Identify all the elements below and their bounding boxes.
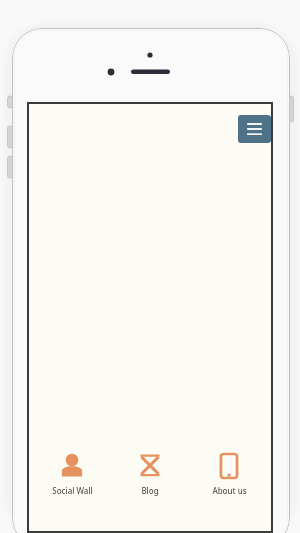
staticText: Blog [141, 485, 159, 496]
button[interactable]: Social Wall [36, 449, 108, 496]
staticText: About us [212, 485, 247, 496]
button[interactable]: Blog [114, 449, 186, 496]
staticText: Social Wall [52, 485, 93, 496]
button[interactable]: Menu [238, 115, 271, 143]
button[interactable]: About us [193, 449, 265, 496]
